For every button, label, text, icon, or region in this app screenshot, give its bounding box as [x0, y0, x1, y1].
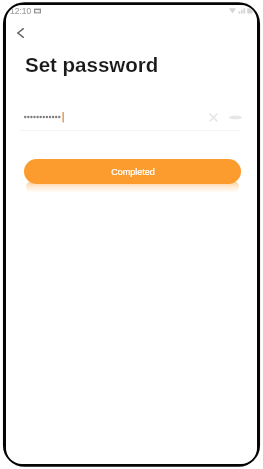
staticText: Set password: [25, 53, 159, 76]
button[interactable]: Back: [8, 21, 32, 45]
staticText: Completed: [111, 167, 155, 177]
button[interactable]: Password field: [20, 108, 200, 131]
staticText: 12:10: [10, 6, 32, 15]
button[interactable]: Show password: [223, 107, 247, 127]
button[interactable]: Completed: [24, 159, 241, 184]
button[interactable]: Clear text: [203, 107, 223, 127]
